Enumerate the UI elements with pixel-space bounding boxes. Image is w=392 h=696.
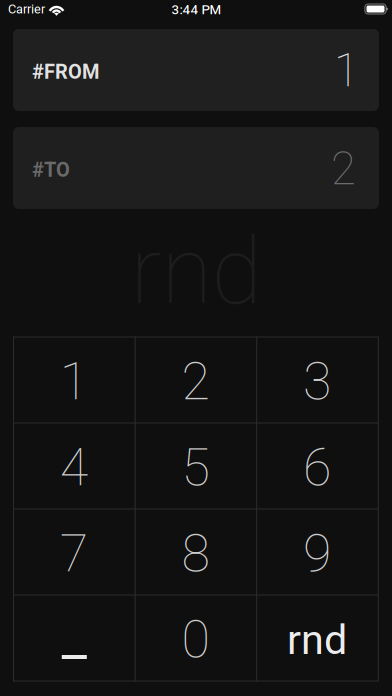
button[interactable]: Delete	[13, 594, 135, 680]
button[interactable]: #FROM	[13, 29, 379, 111]
button[interactable]: 7	[13, 508, 135, 594]
button[interactable]: 4	[13, 422, 135, 508]
staticText: 1	[334, 39, 359, 105]
button[interactable]: 5	[135, 422, 256, 508]
button[interactable]: 8	[135, 508, 256, 594]
staticText: 3:44 PM	[171, 0, 221, 20]
staticText: 2	[181, 345, 209, 421]
staticText: 7	[60, 517, 88, 593]
button[interactable]: 2	[135, 336, 256, 422]
staticText: 3	[303, 345, 331, 421]
staticText: 2	[331, 137, 356, 203]
staticText: 9	[303, 517, 331, 593]
staticText: 6	[303, 431, 331, 507]
staticText: 5	[181, 431, 209, 507]
staticText: 1	[60, 345, 88, 421]
button[interactable]: 1	[13, 336, 135, 422]
staticText: 0	[181, 603, 209, 679]
staticText: rnd	[130, 207, 261, 342]
staticText: Carrier	[8, 0, 45, 19]
button[interactable]: 0	[135, 594, 256, 680]
button[interactable]: 6	[256, 422, 378, 508]
button[interactable]: 9	[256, 508, 378, 594]
staticText: #TO	[32, 156, 70, 185]
button[interactable]: 3	[256, 336, 378, 422]
staticText: 8	[181, 517, 209, 593]
button[interactable]: #TO	[13, 127, 379, 209]
button[interactable]: rnd	[256, 594, 378, 680]
staticText: rnd	[287, 611, 347, 671]
staticText: #FROM	[32, 58, 100, 87]
staticText: 4	[60, 431, 88, 507]
